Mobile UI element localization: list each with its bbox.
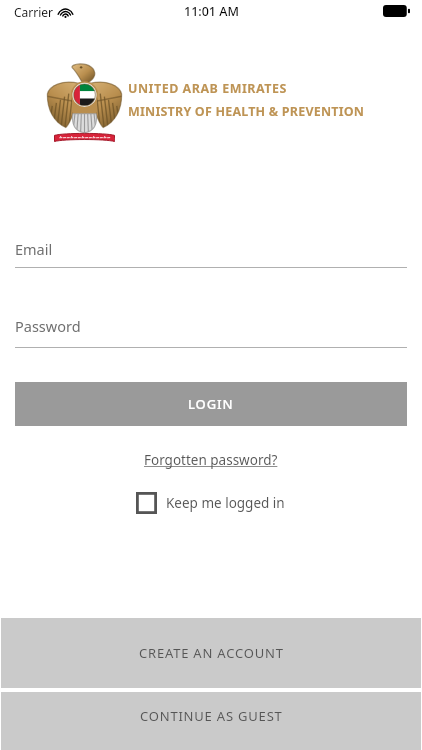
staticText: 11:01 AM [184,3,239,20]
button[interactable]: Keep me logged in [136,490,285,516]
staticText: Password [15,316,81,336]
staticText: Keep me logged in [166,494,285,512]
button[interactable]: LOGIN [15,382,407,426]
button[interactable]: CONTINUE AS GUEST [1,692,421,750]
staticText: Carrier [14,4,54,20]
other: UAE Ministry of Health and Prevention em… [47,61,122,149]
staticText: LOGIN [188,395,234,413]
staticText: Forgotten password? [144,451,278,469]
staticText: Email [15,239,53,259]
staticText: MINISTRY OF HEALTH & PREVENTION [128,103,365,120]
button[interactable]: Forgotten password? [136,448,286,472]
button[interactable]: CREATE AN ACCOUNT [1,618,421,688]
staticText: CONTINUE AS GUEST [140,707,283,725]
staticText: CREATE AN ACCOUNT [139,644,284,662]
staticText: UNITED ARAB EMIRATES [128,80,287,97]
